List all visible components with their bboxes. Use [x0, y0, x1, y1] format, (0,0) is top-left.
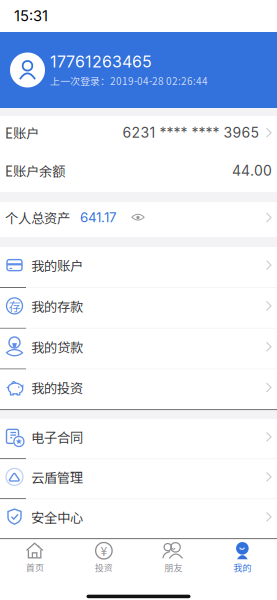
button[interactable]: E账户: [0, 116, 277, 154]
staticText: 我的存款: [31, 296, 83, 315]
button[interactable]: 个人总资产: [0, 202, 277, 237]
staticText: 朋友: [164, 561, 182, 574]
staticText: E账户余额: [5, 161, 65, 180]
staticText: ¥: [100, 542, 107, 559]
button[interactable]: 我的: [208, 540, 277, 576]
button[interactable]: ¥: [69, 540, 138, 576]
staticText: 15:31: [14, 7, 48, 25]
button[interactable]: 我的账户: [0, 247, 277, 288]
button[interactable]: 朋友: [138, 540, 208, 576]
staticText: 首页: [26, 561, 44, 574]
button[interactable]: 我的贷款: [0, 329, 277, 369]
staticText: 641.17: [80, 209, 117, 225]
staticText: 上一次登录：2019-04-28 02:26:44: [50, 73, 208, 88]
staticText: 存: [8, 297, 20, 315]
staticText: 电子合同: [31, 427, 83, 446]
button[interactable]: 首页: [0, 540, 69, 576]
staticText: 安全中心: [31, 507, 83, 526]
button[interactable]: 存: [0, 288, 277, 329]
staticText: 个人总资产: [5, 208, 70, 227]
staticText: 我的: [233, 561, 251, 574]
staticText: 云盾管理: [31, 467, 83, 486]
staticText: 我的贷款: [31, 337, 83, 356]
staticText: 我的投资: [31, 378, 83, 397]
button[interactable]: 云盾管理: [0, 459, 277, 499]
staticText: 17761263465: [50, 52, 152, 71]
button[interactable]: 电子合同: [0, 419, 277, 459]
staticText: 投资: [95, 561, 113, 574]
staticText: 6231 **** **** 3965: [122, 124, 259, 141]
button[interactable]: 安全中心: [0, 499, 277, 539]
button[interactable]: 我的投资: [0, 369, 277, 410]
staticText: 44.00: [232, 162, 272, 179]
staticText: 我的账户: [31, 255, 83, 275]
staticText: E账户: [5, 123, 39, 142]
